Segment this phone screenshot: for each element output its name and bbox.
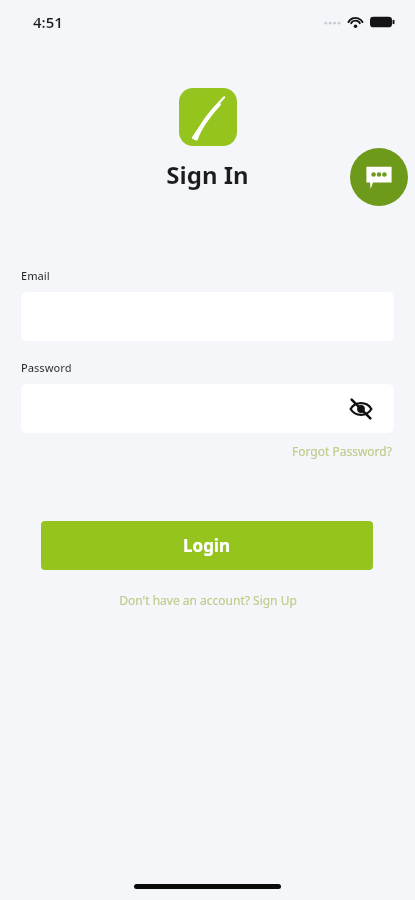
staticText: Forgot Password? (292, 443, 392, 459)
button[interactable]: Don't have an account? Sign Up (115, 590, 301, 610)
button[interactable]: Login (41, 521, 373, 570)
staticText: Login (183, 534, 231, 557)
staticText: Password (21, 360, 72, 375)
button[interactable]: Toggle password visibility (21, 384, 394, 433)
button[interactable]: Toggle password visibility (348, 396, 374, 422)
button[interactable]: Forgot Password? (290, 441, 394, 461)
staticText: 4:51 (33, 12, 63, 32)
staticText: Email (21, 268, 50, 283)
staticText: Don't have an account? Sign Up (119, 592, 297, 608)
staticText: Sign In (166, 158, 249, 191)
button[interactable]: Chat support (350, 148, 408, 206)
